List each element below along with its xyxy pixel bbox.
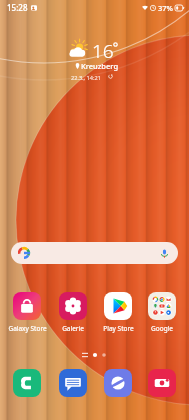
staticText: 37% — [158, 3, 173, 13]
button[interactable]: Play Store — [96, 292, 140, 333]
button[interactable]: Phone — [9, 365, 45, 401]
button[interactable]: Camera — [144, 365, 180, 401]
staticText: Galerie — [62, 324, 84, 333]
staticText: Galaxy Store — [8, 324, 47, 333]
staticText: Kreuzberg — [81, 61, 119, 71]
button[interactable]: Google — [140, 292, 184, 333]
button[interactable]: Internet — [100, 365, 136, 401]
button[interactable]: 16 — [66, 36, 124, 84]
staticText: 16 — [92, 38, 114, 64]
staticText: Play Store — [103, 324, 134, 333]
button[interactable]: Galerie — [51, 292, 95, 333]
staticText: 15:28 — [7, 2, 28, 13]
staticText: Google — [151, 324, 173, 333]
button[interactable]: Messages — [55, 365, 91, 401]
button[interactable]: Galaxy Store — [5, 292, 49, 333]
staticText: 22.3., 14:21 — [71, 74, 101, 82]
button[interactable]: Search — [11, 242, 178, 264]
